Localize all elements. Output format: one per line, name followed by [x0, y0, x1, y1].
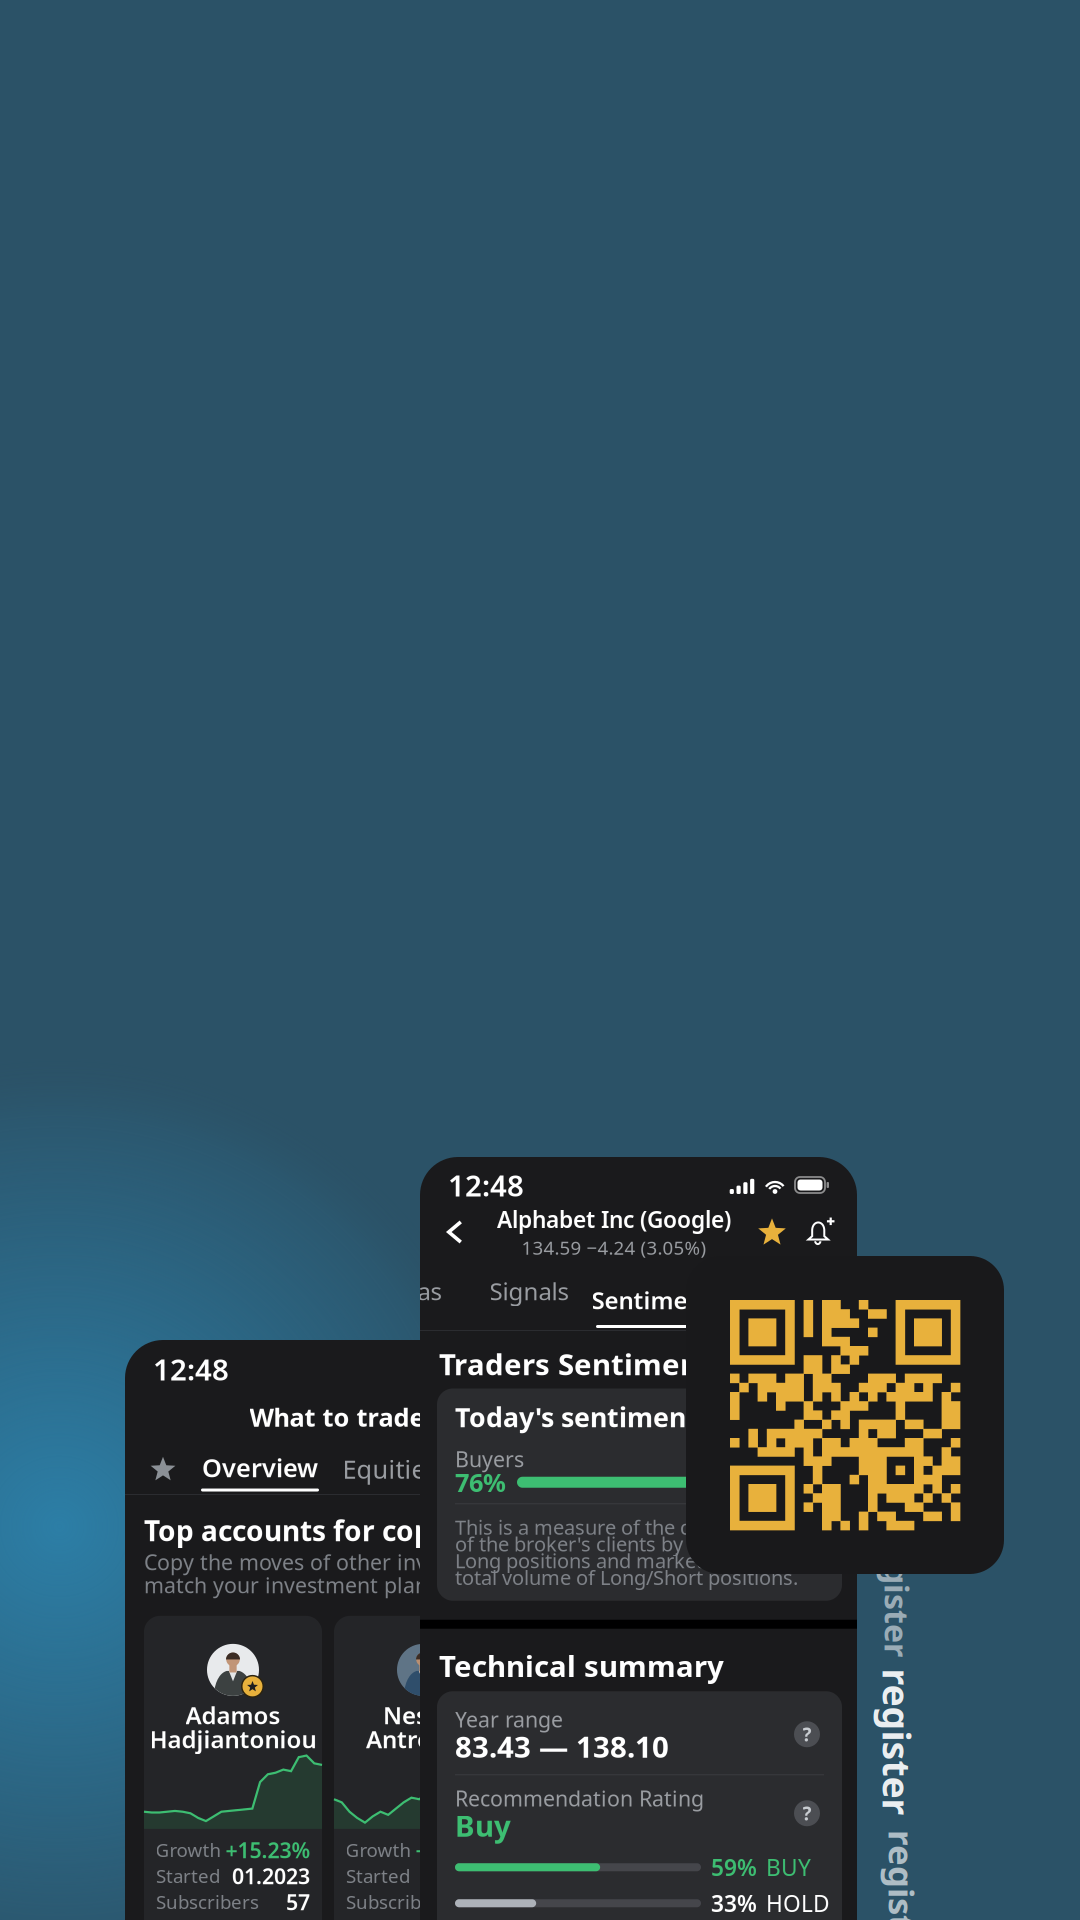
staticText: 31	[476, 1888, 500, 1916]
staticText: Started	[346, 1863, 410, 1888]
button[interactable]: Ideas	[355, 1269, 467, 1333]
staticText: Subscribers	[156, 1889, 259, 1914]
staticText: ?	[802, 1722, 811, 1747]
staticText: Today's sentiment	[455, 1399, 698, 1435]
staticText: This is a measure of the quality of th	[455, 1514, 790, 1540]
staticText: Hadjiantoniou	[149, 1723, 316, 1755]
staticText: 76%	[455, 1465, 506, 1499]
staticText: Buyers	[455, 1445, 524, 1473]
staticText: +11.04%	[415, 1836, 500, 1864]
button[interactable]: Overview	[195, 1444, 325, 1494]
staticText: Equities	[342, 1452, 437, 1486]
staticText: Overview	[202, 1451, 318, 1484]
staticText: register	[834, 1875, 970, 1920]
staticText: Started	[156, 1863, 220, 1888]
button[interactable]: Back	[429, 1206, 481, 1258]
button[interactable]: About year range	[790, 1717, 824, 1751]
staticText: 59%	[711, 1852, 757, 1882]
staticText: Growth	[155, 1837, 221, 1862]
staticText: Growth	[345, 1837, 411, 1862]
staticText: Traders Sentiment	[439, 1344, 712, 1383]
button[interactable]: About recommendation rating	[790, 1796, 824, 1830]
staticText: 83.43 — 138.10	[455, 1727, 669, 1766]
staticText: Year range	[455, 1705, 563, 1733]
staticText: 134.59 −4.24 (3.05%)	[521, 1235, 706, 1260]
staticText: 01.2023	[232, 1862, 310, 1890]
staticText: Top accounts for copying	[144, 1512, 491, 1549]
staticText: Copy the moves of other investors. Fi	[144, 1548, 518, 1576]
staticText: HOLD	[766, 1888, 830, 1918]
staticText: Subscribers	[346, 1889, 449, 1914]
button[interactable]: Equities	[325, 1444, 455, 1494]
staticText: Signals	[489, 1275, 568, 1307]
staticText: Alphabet Inc (Google)	[497, 1204, 731, 1234]
staticText: ?	[802, 1801, 811, 1826]
staticText: 33%	[711, 1888, 757, 1918]
button[interactable]: Add to favourites	[747, 1206, 797, 1258]
button[interactable]: Signals	[467, 1269, 591, 1333]
staticText: Sentiments	[591, 1284, 724, 1316]
staticText: Nestor	[383, 1699, 463, 1731]
staticText: register	[834, 1573, 960, 1615]
staticText: total volume of Long/Short positions.	[455, 1564, 798, 1590]
button[interactable]: Watchlist	[131, 1444, 195, 1494]
staticText: +15.23%	[225, 1836, 310, 1864]
button[interactable]: Price alert	[797, 1206, 847, 1258]
staticText: Buy	[455, 1806, 511, 1845]
staticText: 57	[286, 1888, 310, 1916]
staticText: Adamos	[185, 1699, 280, 1731]
staticText: Recommendation Rating	[455, 1784, 704, 1812]
staticText: of the broker's clients by instrument	[455, 1530, 791, 1557]
staticText: BUY	[766, 1852, 811, 1882]
staticText: match your investment plan and diver	[144, 1571, 529, 1599]
staticText: register	[823, 1717, 970, 1767]
staticText: 12:48	[153, 1349, 229, 1388]
button[interactable]: Sentiments	[591, 1269, 725, 1333]
staticText: Antroulas	[366, 1723, 480, 1755]
staticText: Technical summary	[439, 1646, 724, 1685]
staticText: What to trade?	[249, 1400, 436, 1434]
staticText: 12:48	[448, 1165, 524, 1204]
staticText: Ideas	[380, 1275, 441, 1307]
staticText: Long positions and markets Short posi	[455, 1547, 812, 1574]
staticText: 03.2022	[422, 1862, 500, 1890]
